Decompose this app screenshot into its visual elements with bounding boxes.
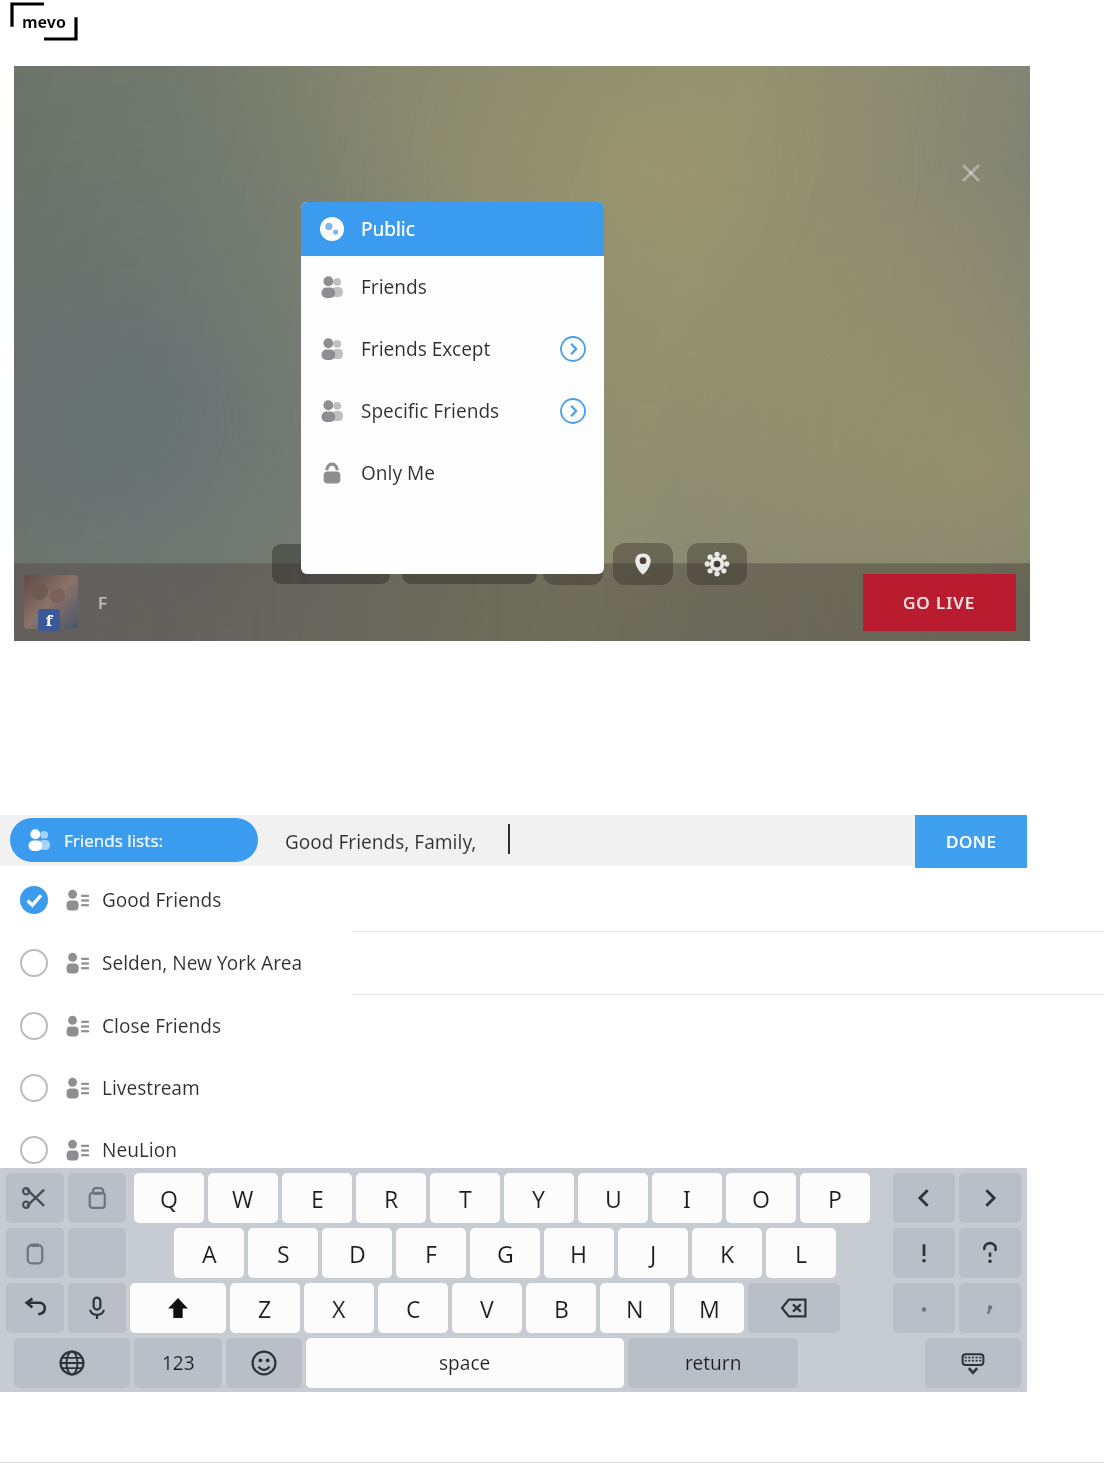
staticText: M [699, 1293, 720, 1324]
button[interactable]: W [208, 1173, 278, 1223]
staticText: 123 [162, 1350, 195, 1376]
button[interactable]: Z [230, 1283, 300, 1333]
button[interactable]: Key [959, 1283, 1021, 1333]
staticText: Good Friends [102, 887, 222, 913]
button[interactable]: I [652, 1173, 722, 1223]
button[interactable]: K [692, 1228, 762, 1278]
button[interactable]: Q [134, 1173, 204, 1223]
staticText: Friends [361, 274, 427, 300]
button[interactable]: Public [402, 544, 537, 584]
staticText: Y [532, 1183, 546, 1214]
button[interactable]: Friends lists: [10, 818, 258, 862]
button[interactable]: Friends [301, 256, 604, 318]
staticText: C [406, 1293, 421, 1324]
button[interactable]: 123 [134, 1338, 222, 1388]
staticText: Livestream [102, 1075, 200, 1101]
button[interactable]: Audience [543, 543, 603, 585]
button[interactable]: Close Friends [0, 995, 1027, 1057]
button[interactable]: Key [6, 1228, 64, 1278]
button[interactable]: L [766, 1228, 836, 1278]
staticText: f [46, 610, 53, 630]
staticText: O [752, 1183, 770, 1214]
staticText: E [311, 1183, 324, 1214]
staticText: Friends lists: [64, 829, 164, 852]
button[interactable]: Settings [687, 543, 747, 585]
button[interactable]: Friends Except [301, 318, 604, 380]
staticText: Selden, New York Area [102, 950, 303, 976]
staticText: space [439, 1350, 491, 1376]
staticText: D [349, 1238, 366, 1269]
staticText: S [277, 1238, 290, 1269]
staticText: Public [361, 216, 415, 242]
button[interactable]: P [800, 1173, 870, 1223]
button[interactable]: Key [748, 1283, 840, 1333]
button[interactable]: Y [504, 1173, 574, 1223]
button[interactable]: Key [14, 1338, 130, 1388]
button[interactable]: N [600, 1283, 670, 1333]
button[interactable]: M [674, 1283, 744, 1333]
staticText: P [828, 1183, 842, 1214]
button[interactable]: O [726, 1173, 796, 1223]
button[interactable]: R [356, 1173, 426, 1223]
staticText: GO LIVE [903, 591, 976, 614]
button[interactable]: S [248, 1228, 318, 1278]
staticText: I [683, 1183, 691, 1214]
staticText: Friends Except [361, 336, 491, 362]
button[interactable]: Key [6, 1283, 64, 1333]
button[interactable]: Only Me [301, 442, 604, 504]
button[interactable]: H [544, 1228, 614, 1278]
button[interactable]: space [306, 1338, 624, 1388]
button[interactable]: Key [925, 1338, 1021, 1388]
button[interactable]: Specific Friends [301, 380, 604, 442]
button[interactable]: E [282, 1173, 352, 1223]
staticText: Z [258, 1293, 272, 1324]
staticText: T [459, 1183, 472, 1214]
button[interactable]: X [304, 1283, 374, 1333]
staticText: F [98, 591, 107, 614]
button[interactable]: Key [893, 1173, 955, 1223]
button[interactable]: GO LIVE [863, 574, 1016, 631]
button[interactable]: Public [301, 202, 604, 256]
button[interactable]: Location [613, 543, 673, 585]
staticText: K [720, 1238, 735, 1269]
button[interactable]: Good Friends [0, 869, 1027, 931]
staticText: H [570, 1238, 588, 1269]
button[interactable]: D [322, 1228, 392, 1278]
staticText: DONE [946, 830, 997, 853]
button[interactable]: T [430, 1173, 500, 1223]
staticText: L [795, 1238, 808, 1269]
button[interactable]: HD [272, 544, 390, 584]
button[interactable]: Close [954, 156, 988, 190]
staticText: Close Friends [102, 1013, 222, 1039]
button[interactable]: Selden, New York Area [0, 932, 1027, 994]
button[interactable]: NeuLion [0, 1119, 1027, 1181]
button[interactable]: F [396, 1228, 466, 1278]
button[interactable]: Livestream [0, 1057, 1027, 1119]
staticText: X [332, 1293, 346, 1324]
button[interactable]: Key [893, 1283, 955, 1333]
button[interactable]: Key [6, 1173, 64, 1223]
button[interactable]: J [618, 1228, 688, 1278]
button[interactable]: A [174, 1228, 244, 1278]
button[interactable]: B [526, 1283, 596, 1333]
button[interactable]: Key [959, 1173, 1021, 1223]
button[interactable]: Key [959, 1228, 1021, 1278]
staticText: W [232, 1183, 254, 1214]
button[interactable]: Shift [130, 1283, 226, 1333]
button[interactable]: V [452, 1283, 522, 1333]
button[interactable]: U [578, 1173, 648, 1223]
staticText: NeuLion [102, 1137, 177, 1163]
button[interactable]: Key [226, 1338, 302, 1388]
button[interactable]: Key [893, 1228, 955, 1278]
button[interactable]: Key [68, 1283, 126, 1333]
button[interactable]: DONE [915, 815, 1027, 868]
button[interactable]: C [378, 1283, 448, 1333]
button[interactable]: return [628, 1338, 798, 1388]
staticText: Q [160, 1183, 178, 1214]
button[interactable]: Key [68, 1173, 126, 1223]
button[interactable]: f [24, 575, 78, 629]
button[interactable]: G [470, 1228, 540, 1278]
